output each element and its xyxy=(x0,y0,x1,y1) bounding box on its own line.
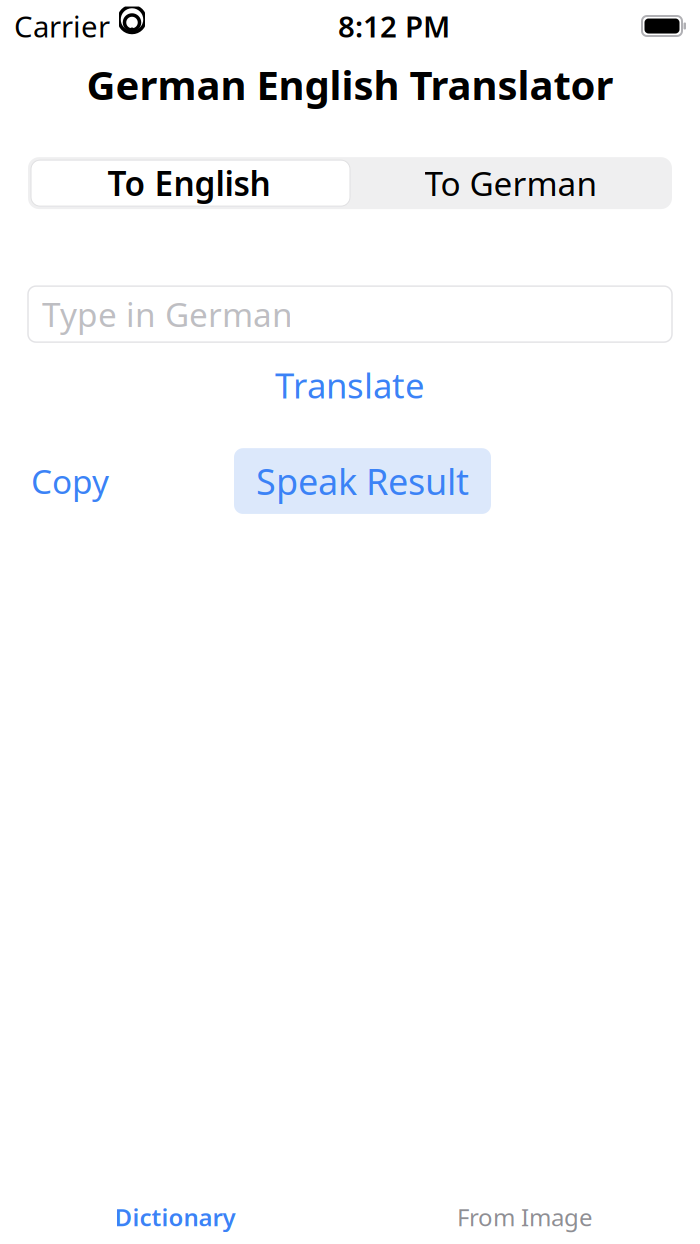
staticText: 8:12 PM xyxy=(338,6,450,45)
button[interactable]: Copy xyxy=(29,449,111,513)
button[interactable]: From Image xyxy=(350,1187,700,1244)
staticText: To German xyxy=(424,161,597,205)
staticText: Translate xyxy=(275,362,425,408)
button[interactable]: Dictionary xyxy=(0,1187,350,1244)
button[interactable]: To German xyxy=(350,157,672,209)
staticText: From Image xyxy=(457,1201,593,1233)
staticText: Copy xyxy=(31,459,109,503)
staticText: Dictionary xyxy=(114,1201,235,1233)
staticText: Carrier xyxy=(14,6,110,45)
staticText: Type in German xyxy=(42,292,293,336)
button[interactable]: To English xyxy=(28,157,350,209)
staticText: German English Translator xyxy=(86,58,613,111)
button[interactable]: Translate xyxy=(259,356,441,414)
button[interactable]: Speak Result xyxy=(234,448,491,514)
staticText: Speak Result xyxy=(256,457,469,505)
staticText: To English xyxy=(107,161,270,205)
